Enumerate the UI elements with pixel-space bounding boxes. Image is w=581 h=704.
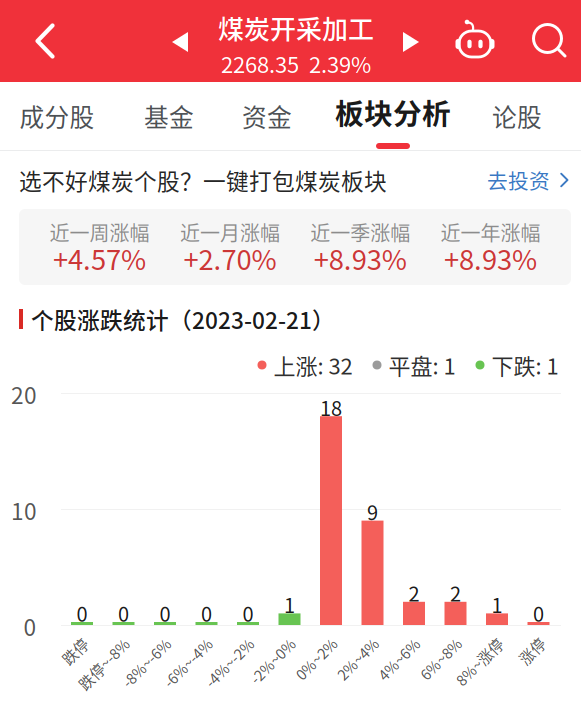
- staticText: 0: [76, 598, 87, 627]
- button[interactable]: 论股: [471, 82, 563, 150]
- staticText: +8.93%: [444, 238, 537, 278]
- staticText: 4%~6%: [373, 648, 425, 670]
- staticText: 近一年涨幅: [440, 217, 540, 246]
- staticText: 跌停~-8%: [71, 653, 136, 674]
- staticText: 资金: [242, 98, 292, 134]
- staticText: -2%~0%: [244, 650, 301, 671]
- staticText: 2268.35 2.39%: [221, 47, 371, 79]
- staticText: 基金: [144, 98, 194, 134]
- button[interactable]: 上一个板块: [158, 15, 202, 69]
- staticText: 0: [201, 598, 212, 627]
- staticText: 2: [450, 578, 461, 607]
- staticText: 18: [320, 393, 342, 422]
- staticText: +2.70%: [183, 238, 276, 278]
- staticText: 0: [242, 598, 253, 627]
- button[interactable]: 返回: [16, 11, 74, 71]
- staticText: 8%~涨停: [449, 651, 509, 672]
- staticText: -6%~-4%: [157, 652, 219, 673]
- staticText: 个股涨跌统计（2023-02-21）: [31, 303, 335, 335]
- staticText: 20: [11, 378, 37, 410]
- staticText: 近一季涨幅: [310, 217, 410, 246]
- button[interactable]: 智能助手: [448, 12, 502, 74]
- staticText: 0: [23, 610, 36, 642]
- staticText: +8.93%: [314, 238, 407, 278]
- staticText: +4.57%: [53, 238, 146, 278]
- staticText: 2: [408, 578, 419, 607]
- staticText: 煤炭开采加工: [218, 9, 374, 46]
- staticText: 6%~8%: [415, 648, 467, 669]
- staticText: 板块分析: [335, 91, 451, 133]
- button[interactable]: 成分股: [1, 82, 113, 150]
- button[interactable]: 板块分析: [323, 82, 463, 150]
- staticText: 去投资: [487, 165, 550, 195]
- staticText: 10: [11, 494, 37, 526]
- staticText: -4%~-2%: [198, 652, 260, 673]
- button[interactable]: 基金: [123, 82, 215, 150]
- button[interactable]: 搜索: [524, 12, 576, 70]
- staticText: 0%~2%: [290, 648, 342, 669]
- staticText: 1: [284, 590, 295, 619]
- staticText: 1: [491, 590, 502, 619]
- staticText: 9: [367, 497, 378, 526]
- staticText: 涨停: [517, 640, 547, 661]
- staticText: 0: [533, 598, 544, 627]
- staticText: 论股: [492, 98, 542, 134]
- staticText: 平盘: 1: [388, 349, 455, 381]
- staticText: 0: [118, 598, 129, 627]
- button[interactable]: 下一个板块: [389, 15, 433, 69]
- button[interactable]: 选不好煤炭个股？一键打包煤炭板块: [0, 156, 581, 204]
- staticText: 选不好煤炭个股？一键打包煤炭板块: [19, 164, 387, 196]
- staticText: 成分股: [19, 98, 94, 134]
- staticText: 0: [159, 598, 170, 627]
- staticText: 上涨: 32: [273, 349, 352, 381]
- staticText: 近一月涨幅: [180, 217, 280, 246]
- staticText: 2%~4%: [332, 648, 384, 669]
- staticText: 下跌: 1: [491, 349, 558, 381]
- staticText: 近一周涨幅: [50, 217, 150, 246]
- staticText: -8%~-6%: [115, 652, 177, 673]
- button[interactable]: 资金: [221, 82, 313, 150]
- staticText: 跌停: [60, 640, 90, 661]
